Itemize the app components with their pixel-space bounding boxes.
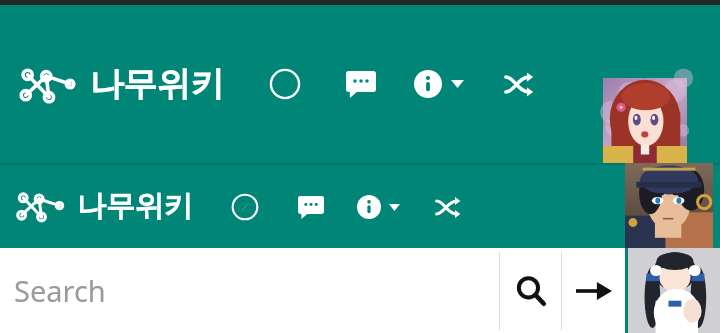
button[interactable]: Explore [262,61,308,107]
button[interactable]: Namuwiki home [12,184,196,229]
other: Namuwiki home [15,192,68,221]
button[interactable]: Random page [496,61,542,107]
button[interactable]: Discuss [338,61,384,107]
button[interactable]: Discuss [291,187,331,227]
staticText: 나무위키 [90,63,224,106]
button[interactable]: Random page [428,187,468,227]
button[interactable]: Go [562,248,625,333]
staticText: 나무위키 [77,188,193,225]
button[interactable]: Namuwiki home [14,59,228,110]
button[interactable]: Search [500,248,561,333]
button[interactable]: Explore [225,187,265,227]
other: Namuwiki home [18,68,80,102]
button[interactable]: Search [0,248,499,333]
button[interactable]: Article thumbnail 2 [625,163,713,248]
button[interactable]: Info menu [357,187,400,227]
button[interactable]: Info menu [414,61,464,107]
button[interactable]: Article thumbnail 3 [628,248,720,333]
staticText: Search [14,271,106,310]
button[interactable]: Article thumbnail 1 [603,78,687,163]
